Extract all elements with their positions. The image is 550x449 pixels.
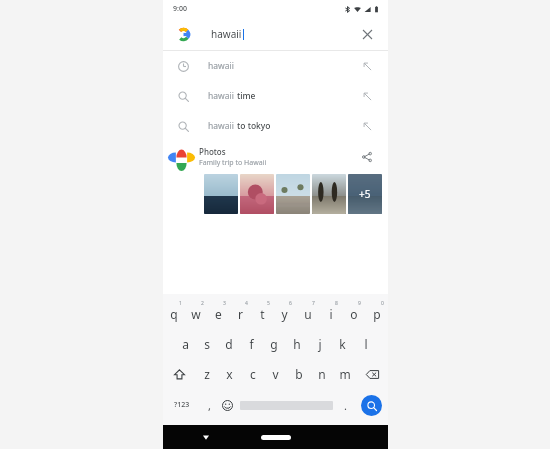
- button[interactable]: u: [296, 301, 319, 327]
- staticText: time: [237, 90, 256, 102]
- button[interactable]: Photo 1: [204, 174, 238, 214]
- button[interactable]: s: [196, 331, 218, 357]
- button[interactable]: d: [218, 331, 240, 357]
- staticText: z: [204, 366, 210, 382]
- button[interactable]: Backspace: [356, 361, 388, 387]
- button[interactable]: v: [264, 361, 287, 387]
- button[interactable]: k: [331, 331, 354, 357]
- staticText: v: [272, 366, 279, 382]
- staticText: t: [260, 306, 265, 322]
- staticText: u: [304, 306, 312, 322]
- button[interactable]: c: [241, 361, 264, 387]
- staticText: 9:00: [173, 4, 187, 14]
- staticText: hawaii: [208, 90, 237, 102]
- button[interactable]: Hide keyboard: [199, 430, 213, 444]
- staticText: 7: [312, 300, 315, 307]
- button[interactable]: Photo 3: [276, 174, 310, 214]
- button[interactable]: i: [319, 301, 342, 327]
- staticText: 9: [358, 300, 361, 307]
- button[interactable]: hawaii: [163, 51, 388, 81]
- button[interactable]: p: [365, 301, 388, 327]
- staticText: 5: [267, 300, 270, 307]
- staticText: 6: [289, 300, 292, 307]
- button[interactable]: ,: [201, 392, 217, 418]
- staticText: c: [250, 366, 256, 382]
- staticText: hawaii: [208, 120, 237, 132]
- button[interactable]: Insert suggestion: [357, 56, 377, 76]
- staticText: f: [249, 336, 254, 352]
- button[interactable]: Space: [237, 392, 336, 418]
- staticText: b: [295, 366, 303, 382]
- button[interactable]: Emoji: [217, 392, 237, 418]
- button[interactable]: e: [207, 301, 229, 327]
- staticText: +5: [359, 187, 371, 201]
- button[interactable]: g: [262, 331, 285, 357]
- staticText: j: [318, 336, 322, 352]
- staticText: ?123: [174, 400, 190, 410]
- staticText: Family trip to Hawaii: [199, 158, 267, 168]
- button[interactable]: n: [310, 361, 333, 387]
- staticText: Photos: [199, 146, 226, 157]
- button[interactable]: r: [229, 301, 251, 327]
- button[interactable]: b: [287, 361, 310, 387]
- staticText: 4: [245, 300, 248, 307]
- staticText: q: [170, 306, 178, 322]
- staticText: hawaii: [208, 60, 234, 72]
- button[interactable]: Photo 5: [348, 174, 382, 214]
- button[interactable]: Photo 4: [312, 174, 346, 214]
- button[interactable]: y: [273, 301, 296, 327]
- staticText: 1: [179, 300, 182, 307]
- staticText: d: [225, 336, 233, 352]
- staticText: n: [318, 366, 326, 382]
- staticText: o: [350, 306, 358, 322]
- button[interactable]: Insert suggestion: [357, 86, 377, 106]
- button[interactable]: j: [308, 331, 331, 357]
- staticText: w: [191, 306, 201, 322]
- button[interactable]: hawaii: [163, 111, 388, 141]
- button[interactable]: a: [174, 331, 196, 357]
- button[interactable]: Shift: [163, 361, 195, 387]
- staticText: g: [270, 336, 278, 352]
- button[interactable]: z: [195, 361, 218, 387]
- staticText: x: [226, 366, 233, 382]
- staticText: h: [293, 336, 301, 352]
- button[interactable]: Photo 2: [240, 174, 274, 214]
- button[interactable]: Photos: [163, 141, 388, 214]
- staticText: 3: [223, 300, 226, 307]
- staticText: i: [329, 306, 333, 322]
- staticText: p: [373, 306, 381, 322]
- button[interactable]: w: [185, 301, 207, 327]
- staticText: to tokyo: [237, 120, 271, 132]
- button[interactable]: Home: [261, 435, 291, 440]
- button[interactable]: o: [342, 301, 365, 327]
- button[interactable]: Insert suggestion: [357, 116, 377, 136]
- button[interactable]: m: [333, 361, 356, 387]
- staticText: s: [204, 336, 210, 352]
- button[interactable]: h: [285, 331, 308, 357]
- button[interactable]: t: [251, 301, 273, 327]
- button[interactable]: hawaii: [163, 18, 388, 50]
- button[interactable]: ?123: [163, 392, 201, 418]
- button[interactable]: Search: [354, 392, 388, 418]
- button[interactable]: f: [240, 331, 262, 357]
- staticText: e: [215, 306, 222, 322]
- staticText: 8: [335, 300, 338, 307]
- staticText: 2: [201, 300, 204, 307]
- staticText: y: [281, 306, 288, 322]
- button[interactable]: Clear search: [356, 23, 378, 45]
- staticText: a: [182, 336, 189, 352]
- button[interactable]: l: [354, 331, 377, 357]
- button[interactable]: .: [336, 392, 354, 418]
- staticText: 0: [381, 300, 384, 307]
- staticText: m: [339, 366, 351, 382]
- button[interactable]: x: [218, 361, 241, 387]
- staticText: r: [238, 306, 243, 322]
- staticText: ,: [208, 398, 211, 413]
- staticText: l: [364, 336, 368, 352]
- button[interactable]: hawaii: [163, 81, 388, 111]
- staticText: hawaii: [211, 27, 242, 41]
- button[interactable]: q: [163, 301, 185, 327]
- staticText: k: [339, 336, 346, 352]
- button[interactable]: Share: [357, 147, 377, 167]
- staticText: .: [344, 398, 347, 413]
